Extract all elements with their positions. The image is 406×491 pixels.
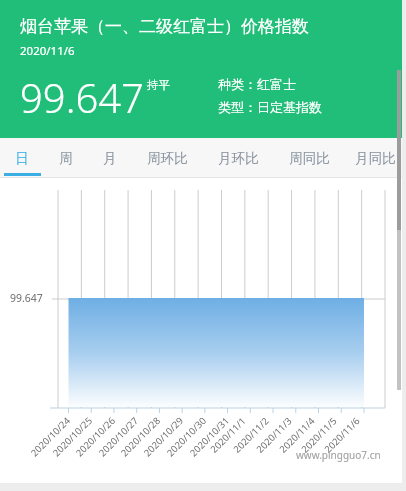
button[interactable]: 周同比 <box>274 138 345 178</box>
staticText: 2020/11/5 <box>298 414 340 456</box>
button[interactable]: 月 <box>88 138 132 178</box>
staticText: 2020/10/31 <box>187 414 232 459</box>
staticText: 2020/11/6 <box>20 43 75 59</box>
staticText: 2020/10/28 <box>118 414 163 459</box>
button[interactable]: 周环比 <box>132 138 203 178</box>
staticText: 2020/10/27 <box>96 414 141 459</box>
staticText: 2020/11/1 <box>207 414 249 456</box>
staticText: 持平 <box>147 78 170 92</box>
staticText: 周环比 <box>147 150 188 167</box>
staticText: 周同比 <box>289 150 330 167</box>
staticText: 2020/11/3 <box>253 414 295 456</box>
button[interactable]: 月环比 <box>203 138 274 178</box>
staticText: 月环比 <box>218 150 259 167</box>
staticText: 种类：红富士 <box>218 76 296 92</box>
staticText: www.pingguo7.cn <box>296 448 381 462</box>
staticText: 日 <box>15 150 29 167</box>
staticText: 月同比 <box>355 150 396 167</box>
staticText: 2020/10/25 <box>50 414 95 459</box>
staticText: 类型：日定基指数 <box>218 99 322 115</box>
staticText: 2020/10/26 <box>73 414 118 459</box>
staticText: 2020/10/30 <box>164 414 209 459</box>
staticText: 周 <box>59 150 73 167</box>
staticText: 烟台苹果（一、二级红富士）价格指数 <box>20 16 309 37</box>
staticText: 99.647 <box>20 70 144 124</box>
staticText: 99.647 <box>10 291 43 305</box>
staticText: 2020/11/4 <box>276 414 318 456</box>
staticText: 2020/11/2 <box>230 414 272 456</box>
staticText: 月 <box>103 150 117 167</box>
staticText: 2020/10/24 <box>28 414 73 459</box>
button[interactable]: 周 <box>44 138 88 178</box>
staticText: 2020/10/29 <box>141 414 186 459</box>
button[interactable]: 月同比 <box>345 138 406 178</box>
button[interactable]: 日 <box>0 138 44 178</box>
staticText: 2020/11/6 <box>321 414 363 456</box>
